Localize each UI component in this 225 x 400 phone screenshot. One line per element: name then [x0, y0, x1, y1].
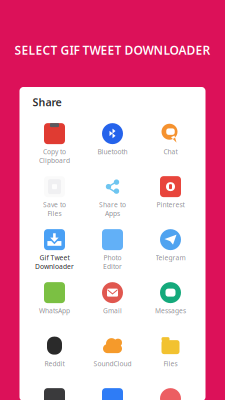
button[interactable]: Chat [141, 123, 199, 176]
button[interactable]: SoundCloud [83, 335, 141, 388]
staticText: Messages [155, 306, 186, 315]
button[interactable]: Messages [141, 282, 199, 335]
button[interactable] [141, 388, 199, 400]
staticText: Share [32, 95, 61, 109]
staticText: Bluetooth [97, 147, 127, 156]
staticText: Share to [99, 200, 126, 209]
button[interactable] [25, 388, 83, 400]
staticText: Save to [43, 200, 66, 209]
button[interactable]: Reddit [25, 335, 83, 388]
button[interactable]: WhatsApp [25, 282, 83, 335]
staticText: Clipboard [39, 156, 70, 165]
staticText: Copy to [43, 147, 66, 156]
staticText: Chat [163, 147, 177, 156]
staticText: Photo [103, 253, 121, 262]
button[interactable]: Save to [25, 176, 83, 229]
staticText: Telegram [155, 253, 185, 262]
staticText: Reddit [44, 359, 64, 368]
staticText: Gmail [103, 306, 122, 315]
button[interactable]: Files [141, 335, 199, 388]
staticText: Pinterest [156, 200, 184, 209]
staticText: SoundCloud [93, 359, 131, 368]
staticText: Files [47, 209, 61, 218]
staticText: Gif Tweet [39, 253, 69, 262]
button[interactable]: Pinterest [141, 176, 199, 229]
button[interactable] [83, 388, 141, 400]
button[interactable]: Gmail [83, 282, 141, 335]
staticText: SELECT GIF TWEET DOWNLOADER [14, 42, 210, 58]
button[interactable]: Bluetooth [83, 123, 141, 176]
staticText: Downloader [35, 262, 74, 271]
staticText: Files [163, 359, 177, 368]
button[interactable]: Gif Tweet [25, 229, 83, 282]
button[interactable]: Photo [83, 229, 141, 282]
button[interactable]: Copy to [25, 123, 83, 176]
button[interactable]: Share to [83, 176, 141, 229]
button[interactable]: Telegram [141, 229, 199, 282]
staticText: WhatsApp [39, 306, 70, 315]
staticText: Editor [103, 262, 122, 271]
staticText: Apps [105, 209, 120, 218]
